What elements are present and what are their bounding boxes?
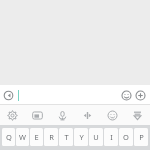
- button[interactable]: Stickers: [32, 110, 43, 121]
- button[interactable]: Settings: [7, 110, 18, 121]
- staticText: P: [139, 132, 144, 142]
- staticText: O: [123, 132, 129, 142]
- button[interactable]: Emoji: [121, 90, 132, 101]
- button[interactable]: O: [119, 128, 133, 146]
- staticText: R: [49, 132, 54, 142]
- button[interactable]: R: [44, 128, 58, 146]
- button[interactable]: Emoticons: [107, 110, 118, 121]
- staticText: W: [19, 132, 26, 142]
- button[interactable]: Voice input: [3, 90, 14, 101]
- staticText: U: [93, 132, 99, 142]
- button[interactable]: Y: [74, 128, 88, 146]
- staticText: I: [110, 132, 113, 142]
- button[interactable]: U: [89, 128, 103, 146]
- button[interactable]: Add attachment: [135, 90, 146, 101]
- button[interactable]: [18, 85, 121, 105]
- button[interactable]: Move cursor: [82, 110, 93, 121]
- button[interactable]: P: [134, 128, 148, 146]
- button[interactable]: Q: [2, 128, 15, 146]
- button[interactable]: I: [104, 128, 118, 146]
- staticText: Q: [6, 132, 12, 142]
- staticText: Y: [79, 132, 84, 142]
- button[interactable]: W: [16, 128, 29, 146]
- button[interactable]: Hide keyboard: [132, 110, 143, 121]
- staticText: E: [34, 132, 39, 142]
- button[interactable]: E: [30, 128, 43, 146]
- button[interactable]: Voice typing: [57, 110, 68, 121]
- button[interactable]: T: [59, 128, 73, 146]
- staticText: T: [64, 132, 69, 142]
